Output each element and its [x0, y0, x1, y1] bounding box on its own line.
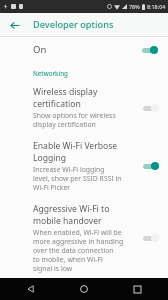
staticText: Enable Wi-Fi Verbose Logging [33, 140, 118, 163]
staticText: Developer options [33, 18, 114, 31]
button[interactable]: Aggressive Wi-Fi to mobile handover [0, 197, 168, 278]
staticText: On [33, 43, 139, 56]
staticText: Networking [33, 69, 68, 77]
button[interactable]: Back [5, 16, 23, 34]
staticText: Show options for wireless display certif… [33, 111, 116, 129]
staticText: Increase Wi-Fi logging level, show per S… [33, 165, 122, 192]
button[interactable]: Home [75, 280, 93, 298]
button[interactable]: Back [22, 280, 40, 298]
button[interactable]: On [0, 37, 168, 62]
button[interactable]: Enable Wi-Fi Verbose Logging [0, 134, 168, 197]
button[interactable]: Recent apps [128, 280, 146, 298]
staticText: Aggressive Wi-Fi to mobile handover [33, 203, 110, 226]
button[interactable]: Wireless display certification [0, 80, 168, 134]
staticText: When enabled, Wi-Fi will be more aggress… [33, 228, 124, 273]
staticText: 8:18:04 [147, 3, 166, 10]
staticText: Wireless display certification [33, 86, 98, 109]
staticText: 78% [129, 3, 140, 10]
